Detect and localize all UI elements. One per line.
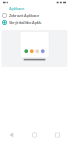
staticText: Aplikace: [9, 6, 24, 11]
staticText: Skrýt tlačítko Aplik.: [9, 20, 42, 25]
button[interactable]: Zobrazit Aplikace: [0, 12, 69, 19]
button[interactable]: Home: [23, 130, 46, 140]
button[interactable]: Recent apps: [46, 130, 69, 140]
button[interactable]: Skrýt tlačítko Aplik.: [0, 19, 69, 26]
staticText: Zobrazit Aplikace: [9, 13, 39, 18]
button[interactable]: Back: [0, 130, 23, 140]
